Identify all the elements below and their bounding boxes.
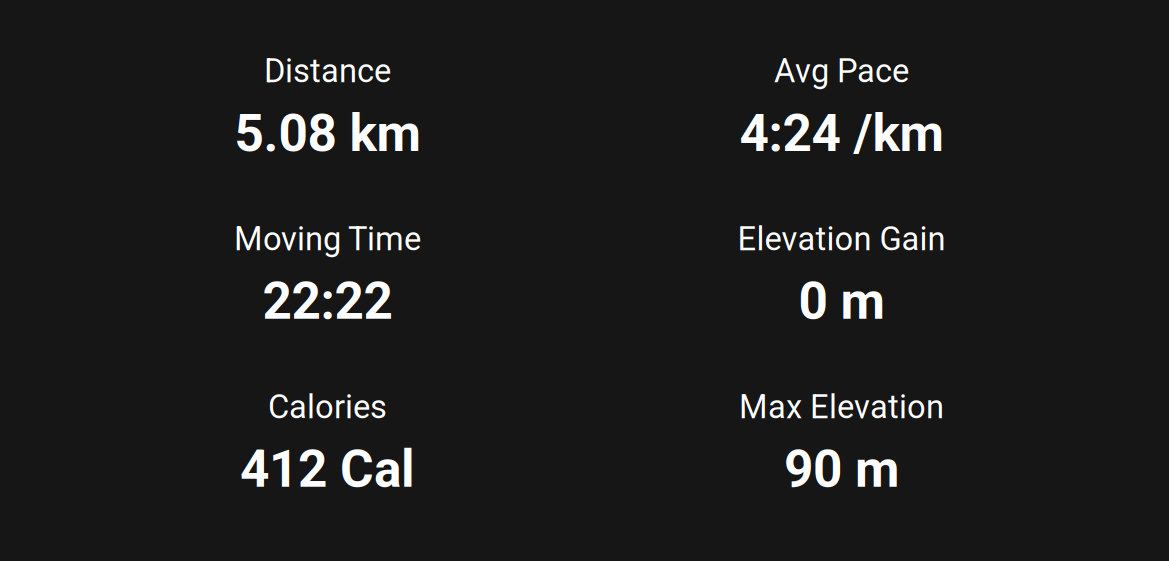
staticText: Distance (264, 52, 391, 90)
staticText: 0 m (798, 271, 884, 331)
button[interactable]: Avg Pace (584, 52, 1098, 163)
staticText: Avg Pace (774, 52, 909, 90)
staticText: Max Elevation (739, 388, 944, 426)
staticText: 4:24 /km (739, 103, 943, 163)
staticText: Moving Time (234, 220, 421, 258)
staticText: 90 m (784, 439, 899, 499)
button[interactable]: Moving Time (70, 220, 584, 331)
button[interactable]: Calories (70, 388, 584, 499)
staticText: Elevation Gain (737, 220, 945, 258)
staticText: Calories (268, 388, 387, 426)
button[interactable]: Max Elevation (584, 388, 1098, 499)
staticText: 412 Cal (240, 439, 415, 499)
button[interactable]: Distance (70, 52, 584, 163)
staticText: 5.08 km (234, 103, 420, 163)
staticText: 22:22 (262, 271, 392, 331)
button[interactable]: Elevation Gain (584, 220, 1098, 331)
